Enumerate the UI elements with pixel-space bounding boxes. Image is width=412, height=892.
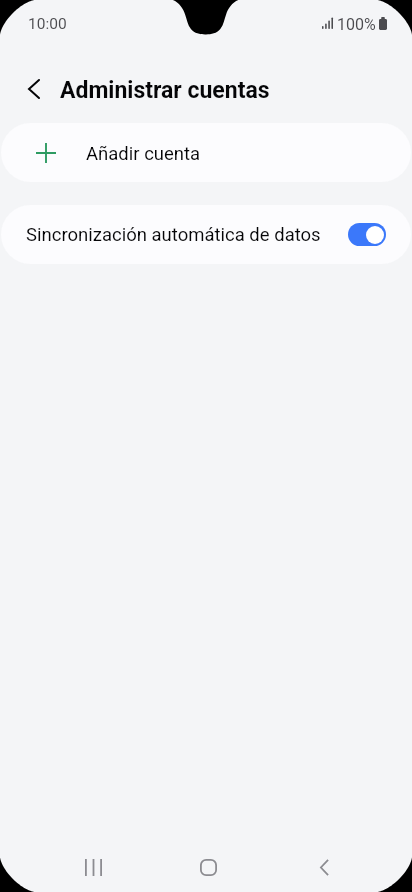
staticText: Administrar cuentas: [60, 77, 270, 104]
button[interactable]: Añadir cuenta: [1, 123, 411, 182]
button[interactable]: Sincronización automática de datos: [1, 205, 411, 264]
button[interactable]: Recents: [69, 843, 117, 891]
button[interactable]: Home: [184, 843, 232, 891]
staticText: Sincronización automática de datos: [26, 224, 321, 246]
staticText: Añadir cuenta: [86, 143, 201, 165]
staticText: 10:00: [28, 15, 67, 33]
button[interactable]: Back: [300, 843, 348, 891]
button[interactable]: Sincronización automática de datos: [348, 223, 386, 246]
button[interactable]: Back: [16, 71, 50, 105]
staticText: 100%: [337, 15, 376, 34]
